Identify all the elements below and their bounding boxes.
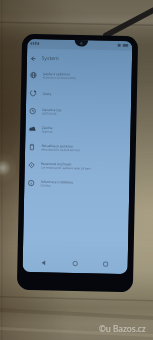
button[interactable] [0, 0, 153, 340]
